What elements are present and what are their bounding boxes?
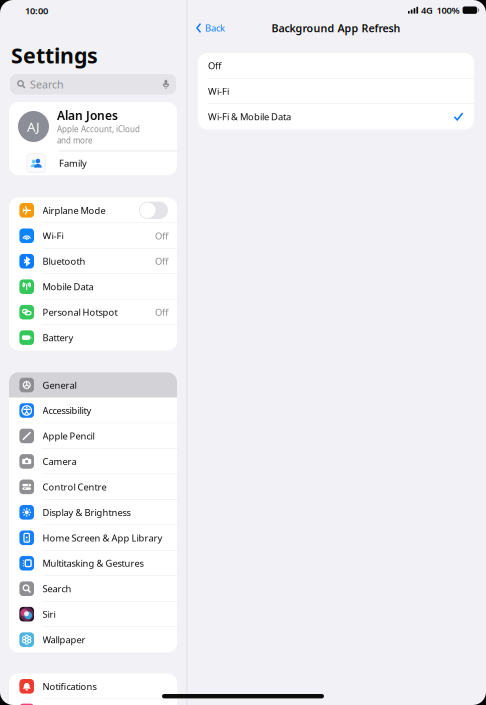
button[interactable]: Wi-Fi xyxy=(198,78,474,104)
button[interactable]: Multitasking & Gestures xyxy=(9,550,177,576)
button[interactable]: Back xyxy=(187,17,233,39)
button[interactable]: Camera xyxy=(9,449,177,474)
staticText: Battery xyxy=(42,331,73,344)
button[interactable]: Mobile Data xyxy=(9,274,177,299)
staticText: Multitasking & Gestures xyxy=(42,557,143,569)
staticText: Home Screen & App Library xyxy=(42,532,162,544)
staticText: Alan Jones xyxy=(57,107,118,123)
button[interactable]: Siri xyxy=(9,601,177,627)
button[interactable]: General xyxy=(9,372,177,398)
button[interactable]: Display & Brightness xyxy=(9,500,177,525)
staticText: Off xyxy=(155,306,168,318)
staticText: Control Centre xyxy=(42,481,106,493)
staticText: Back xyxy=(205,22,225,34)
button[interactable]: Search xyxy=(10,74,176,94)
staticText: Off xyxy=(155,255,168,267)
staticText: Airplane Mode xyxy=(42,204,105,216)
button[interactable]: Control Centre xyxy=(9,474,177,499)
button[interactable]: Personal Hotspot xyxy=(9,299,177,325)
staticText: Search xyxy=(42,582,71,595)
button[interactable]: Airplane Mode xyxy=(9,198,177,223)
button[interactable]: Apple Pencil xyxy=(9,423,177,449)
staticText: and more xyxy=(57,135,93,146)
button[interactable]: Battery xyxy=(9,325,177,350)
staticText: Background App Refresh xyxy=(271,21,400,35)
button[interactable]: Notifications xyxy=(9,674,177,699)
staticText: Settings xyxy=(11,41,98,69)
staticText: Search xyxy=(30,77,64,91)
staticText: Camera xyxy=(42,455,76,468)
button[interactable]: Accessibility xyxy=(9,398,177,423)
button[interactable]: AJ xyxy=(9,102,177,151)
staticText: Wallpaper xyxy=(42,633,85,646)
staticText: Siri xyxy=(42,608,55,620)
staticText: Notifications xyxy=(42,680,96,692)
staticText: Off xyxy=(155,230,168,242)
staticText: Wi-Fi & Mobile Data xyxy=(208,110,291,123)
staticText: Bluetooth xyxy=(42,255,85,267)
button[interactable]: Wi-Fi xyxy=(9,223,177,248)
button[interactable]: Wallpaper xyxy=(9,627,177,652)
button[interactable]: Wi-Fi & Mobile Data xyxy=(198,104,474,129)
staticText: Off xyxy=(208,59,221,72)
button[interactable]: Sounds xyxy=(9,699,177,705)
staticText: General xyxy=(42,379,76,391)
button[interactable]: Search xyxy=(9,576,177,601)
staticText: Apple Pencil xyxy=(42,430,94,442)
staticText: AJ xyxy=(27,118,40,135)
staticText: Wi-Fi xyxy=(42,230,63,242)
staticText: 4G xyxy=(421,4,433,16)
staticText: Personal Hotspot xyxy=(42,306,117,318)
staticText: Wi-Fi xyxy=(208,85,229,97)
staticText: Apple Account, iCloud xyxy=(57,124,140,134)
button[interactable]: Off xyxy=(198,53,474,78)
button[interactable]: Bluetooth xyxy=(9,248,177,274)
staticText: Accessibility xyxy=(42,404,91,417)
staticText: Family xyxy=(59,157,87,169)
staticText: 10:00 xyxy=(25,4,48,17)
button[interactable]: Family xyxy=(9,151,177,175)
staticText: Display & Brightness xyxy=(42,506,130,518)
button[interactable]: Home Screen & App Library xyxy=(9,525,177,550)
staticText: Mobile Data xyxy=(42,280,93,293)
staticText: 100% xyxy=(437,4,460,16)
